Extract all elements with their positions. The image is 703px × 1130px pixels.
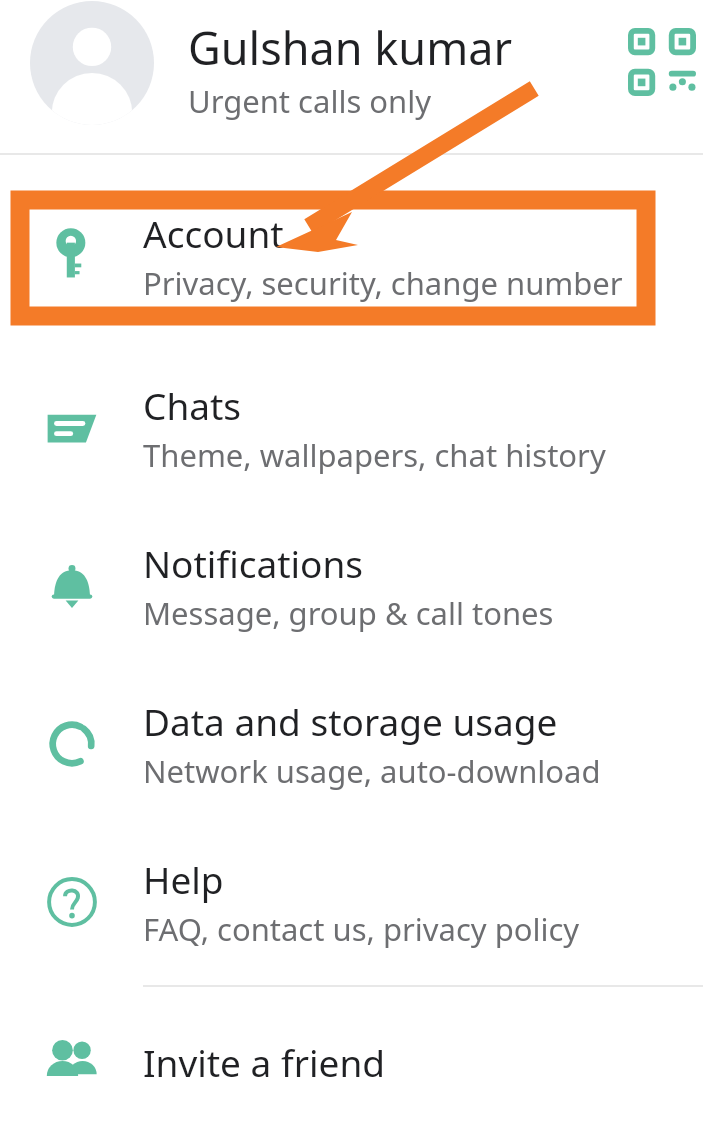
button[interactable]: Help — [0, 838, 703, 966]
button[interactable]: Notifications — [0, 522, 703, 650]
staticText: Network usage, auto-download — [143, 750, 601, 792]
staticText: Theme, wallpapers, chat history — [143, 434, 606, 476]
staticText: Message, group & call tones — [143, 592, 554, 634]
button[interactable]: Chats — [0, 364, 703, 492]
staticText: Invite a friend — [143, 1037, 386, 1087]
staticText: Chats — [143, 380, 242, 430]
staticText: FAQ, contact us, privacy policy — [143, 908, 580, 950]
button[interactable]: Data and storage usage — [0, 680, 703, 808]
staticText: Account — [143, 208, 284, 258]
button[interactable]: Account — [0, 192, 703, 320]
staticText: Urgent calls only — [188, 80, 432, 122]
staticText: Help — [143, 854, 224, 904]
button[interactable]: Gulshan kumar — [0, 0, 703, 155]
staticText: Privacy, security, change number — [143, 262, 623, 304]
button[interactable]: QR code — [628, 28, 696, 96]
button[interactable]: Invite a friend — [0, 1004, 703, 1120]
staticText: Gulshan kumar — [188, 17, 513, 78]
staticText: Data and storage usage — [143, 696, 558, 746]
staticText: Notifications — [143, 538, 364, 588]
